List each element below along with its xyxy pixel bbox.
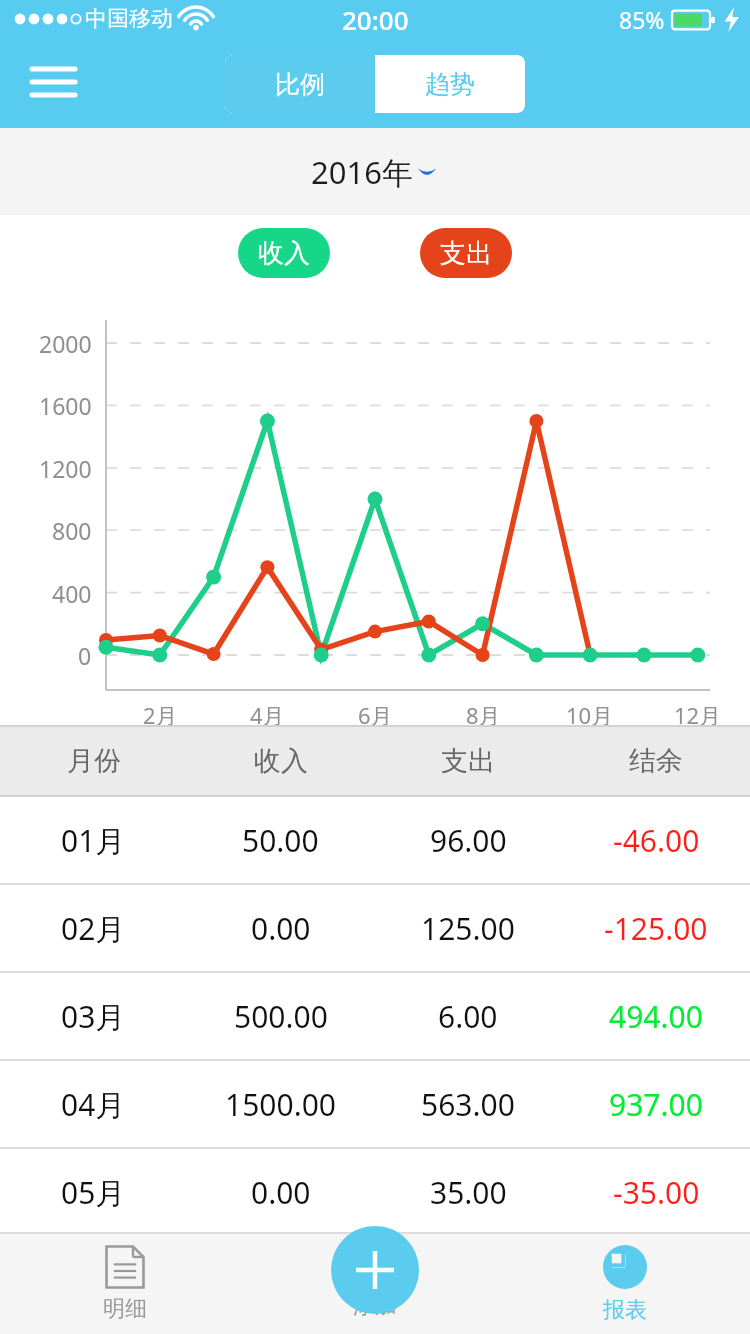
staticText: 收入 [254, 744, 308, 778]
staticText: 8月 [466, 700, 501, 730]
staticText: 10月 [566, 700, 614, 730]
staticText: 01月 [61, 820, 126, 861]
button[interactable]: 明细 [0, 1234, 250, 1334]
staticText: 35.00 [430, 1172, 507, 1213]
staticText: -35.00 [613, 1172, 700, 1213]
staticText: 400 [52, 578, 92, 609]
staticText: 494.00 [609, 996, 703, 1037]
staticText: 1200 [39, 453, 92, 484]
button[interactable]: Menu [20, 54, 76, 104]
button[interactable]: 比例 [225, 55, 375, 113]
staticText: 937.00 [609, 1084, 703, 1125]
staticText: 0 [78, 640, 92, 671]
staticText: 96.00 [430, 820, 507, 861]
staticText: 趋势 [425, 69, 475, 100]
button[interactable]: 04月 [0, 1061, 750, 1147]
staticText: 03月 [61, 996, 126, 1037]
staticText: 明细 [103, 1295, 147, 1323]
staticText: 02月 [61, 908, 126, 949]
staticText: 20:00 [342, 2, 409, 37]
staticText: 563.00 [421, 1084, 515, 1125]
staticText: 支出 [441, 744, 495, 778]
button[interactable]: 支出 [420, 228, 512, 278]
staticText: 中国移动 [85, 5, 173, 33]
staticText: 0.00 [251, 1172, 311, 1213]
staticText: 4月 [250, 700, 285, 730]
button[interactable]: 收入 [238, 228, 330, 278]
button[interactable]: 01月 [0, 797, 750, 883]
staticText: 85% [619, 4, 665, 35]
button[interactable]: 添加 [331, 1226, 419, 1314]
staticText: 04月 [61, 1084, 126, 1125]
button[interactable]: 02月 [0, 885, 750, 971]
staticText: 2000 [39, 328, 92, 359]
button[interactable]: 报表 [500, 1234, 750, 1334]
staticText: 支出 [440, 237, 492, 270]
staticText: 比例 [275, 69, 325, 100]
button[interactable]: 2016年 [0, 128, 750, 215]
staticText: 2016年 [311, 151, 413, 193]
staticText: 500.00 [234, 996, 328, 1037]
staticText: -46.00 [613, 820, 700, 861]
staticText: 月份 [67, 744, 121, 778]
staticText: 05月 [61, 1172, 126, 1213]
staticText: 125.00 [421, 908, 515, 949]
button[interactable]: 趋势 [375, 55, 525, 113]
button[interactable]: 05月 [0, 1149, 750, 1235]
staticText: 收入 [258, 237, 310, 270]
staticText: 800 [52, 515, 92, 546]
staticText: 6月 [358, 700, 393, 730]
staticText: 0.00 [251, 908, 311, 949]
staticText: 添加 [353, 1292, 397, 1320]
button[interactable]: 添加 [250, 1234, 500, 1334]
staticText: 结余 [629, 744, 683, 778]
staticText: 12月 [674, 700, 722, 730]
staticText: 2月 [143, 700, 178, 730]
staticText: 1500.00 [225, 1084, 336, 1125]
staticText: 6.00 [438, 996, 498, 1037]
staticText: 1600 [39, 390, 92, 421]
staticText: 50.00 [242, 820, 319, 861]
staticText: -125.00 [604, 908, 708, 949]
staticText: 报表 [603, 1296, 647, 1324]
button[interactable]: 03月 [0, 973, 750, 1059]
